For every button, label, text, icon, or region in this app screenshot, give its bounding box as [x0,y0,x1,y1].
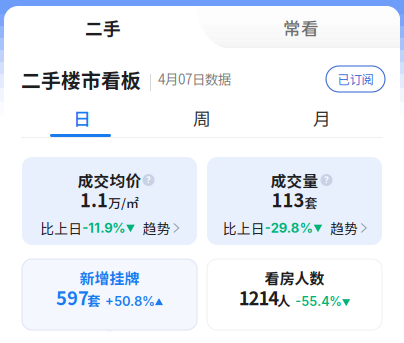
staticText: 1.1 [80,186,108,213]
staticText: 1214 [239,284,279,311]
staticText: 成交均价 [77,169,141,192]
button[interactable]: 成交均价 [22,157,197,245]
staticText: 113 [271,186,304,213]
staticText: 趋势 [330,218,358,238]
staticText: 比上日 [40,218,82,238]
staticText: 周 [193,105,211,131]
staticText: 二手楼市看板 [21,65,141,94]
staticText: -11.9% [82,220,125,236]
staticText: -55.4% [295,294,342,309]
staticText: 4月07日数据 [158,69,231,88]
button[interactable]: 看房人数 [207,259,382,330]
staticText: 成交量 [270,169,318,192]
staticText: 新增挂牌 [79,267,139,289]
button[interactable]: 已订阅 [326,66,385,92]
staticText: 万/㎡ [108,193,139,212]
staticText: 二手 [85,15,121,40]
staticText: 常看 [283,15,319,40]
staticText: 看房人数 [264,267,324,289]
staticText: ? [146,175,151,185]
staticText: 套 [87,290,100,310]
staticText: 套 [304,193,317,212]
staticText: 人 [277,290,290,310]
staticText: 日 [73,105,91,131]
staticText: 月 [313,105,331,131]
staticText: 597 [56,284,89,311]
staticText: 比上日 [223,218,265,238]
staticText: +50.8% [105,293,155,309]
button[interactable]: 周 [142,107,262,133]
button[interactable]: 二手 [4,6,202,49]
button[interactable]: 日 [22,107,142,133]
staticText: ? [324,175,329,185]
button[interactable]: 月 [262,107,382,133]
button[interactable]: 成交量 [207,157,382,245]
button[interactable]: 常看 [202,6,400,49]
staticText: -29.8% [265,220,313,236]
button[interactable]: 新增挂牌 [22,259,197,330]
staticText: 趋势 [143,218,171,238]
staticText: 已订阅 [337,70,373,88]
